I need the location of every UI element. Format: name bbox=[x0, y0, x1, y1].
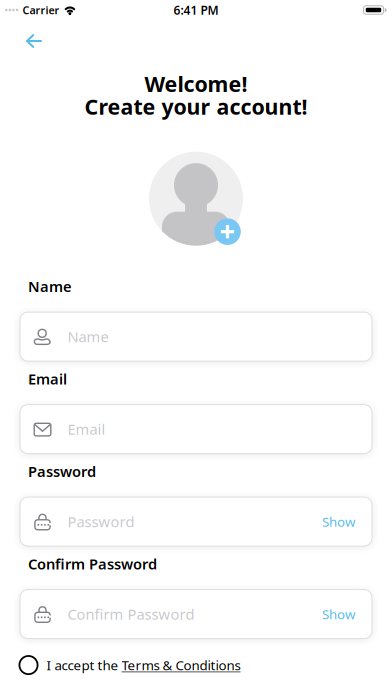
button[interactable]: Show bbox=[322, 513, 355, 530]
button[interactable]: I accept the Terms & Conditions bbox=[18, 655, 240, 675]
button[interactable]: Back bbox=[22, 30, 46, 51]
staticText: Welcome! bbox=[144, 69, 247, 98]
button[interactable]: Confirm Password text field bbox=[20, 590, 372, 639]
staticText: Email bbox=[28, 369, 67, 389]
staticText: Email bbox=[67, 419, 105, 439]
staticText: I accept the Terms & Conditions bbox=[46, 656, 240, 674]
staticText: Carrier bbox=[22, 3, 59, 17]
button[interactable]: Show bbox=[322, 605, 355, 623]
staticText: Name bbox=[28, 277, 72, 296]
staticText: Password bbox=[67, 512, 134, 531]
staticText: Show bbox=[322, 605, 355, 623]
button[interactable]: Name text field bbox=[20, 312, 372, 361]
staticText: Create your account! bbox=[84, 92, 307, 121]
staticText: Password bbox=[28, 462, 96, 481]
button[interactable]: Email text field bbox=[20, 405, 372, 454]
button[interactable]: Password text field bbox=[20, 497, 372, 546]
staticText: Confirm Password bbox=[67, 604, 194, 624]
button[interactable]: Add profile photo bbox=[149, 152, 243, 246]
staticText: Name bbox=[67, 327, 108, 346]
staticText: 6:41 PM bbox=[173, 2, 218, 18]
staticText: Confirm Password bbox=[28, 554, 157, 574]
staticText: Show bbox=[322, 513, 355, 530]
